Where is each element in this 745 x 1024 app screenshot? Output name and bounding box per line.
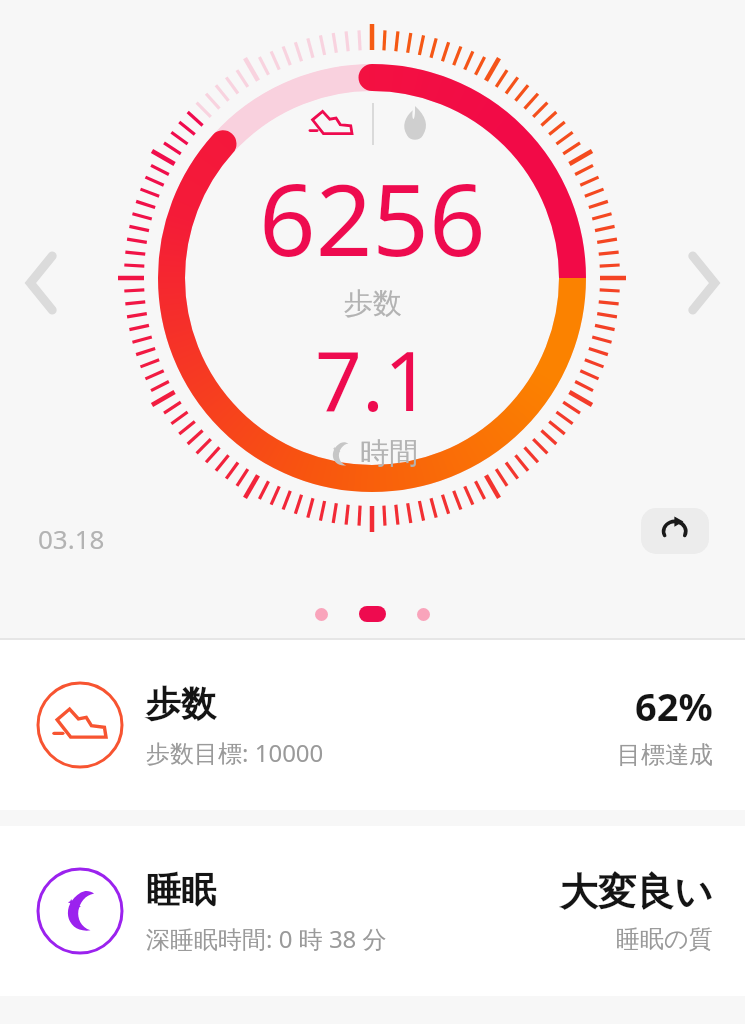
staticText: 深睡眠時間: 0 時 38 分 <box>146 922 387 955</box>
button[interactable]: Page 2 <box>359 606 386 622</box>
button[interactable]: Page 1 <box>315 608 328 621</box>
staticText: 6256 <box>259 150 486 285</box>
button[interactable]: 睡眠 <box>0 826 745 996</box>
button[interactable]: 歩数 <box>0 640 745 810</box>
staticText: 62% <box>635 680 713 732</box>
staticText: 大変良い <box>560 868 713 916</box>
button[interactable]: Next page <box>669 225 739 340</box>
button[interactable]: Calories <box>388 102 442 146</box>
staticText: 時間 <box>360 435 418 472</box>
staticText: 睡眠の質 <box>616 924 713 954</box>
staticText: 目標達成 <box>617 740 713 770</box>
staticText: 歩数目標: 10000 <box>146 736 324 769</box>
staticText: 睡眠 <box>146 868 216 912</box>
staticText: 歩数 <box>146 682 216 726</box>
button[interactable]: Page 3 <box>417 608 430 621</box>
staticText: 7.1 <box>315 323 431 435</box>
button[interactable]: Previous page <box>6 225 76 340</box>
button[interactable]: Refresh <box>641 508 709 554</box>
staticText: 03.18 <box>38 521 105 556</box>
staticText: 歩数 <box>344 285 402 322</box>
button[interactable]: Steps <box>304 102 358 146</box>
